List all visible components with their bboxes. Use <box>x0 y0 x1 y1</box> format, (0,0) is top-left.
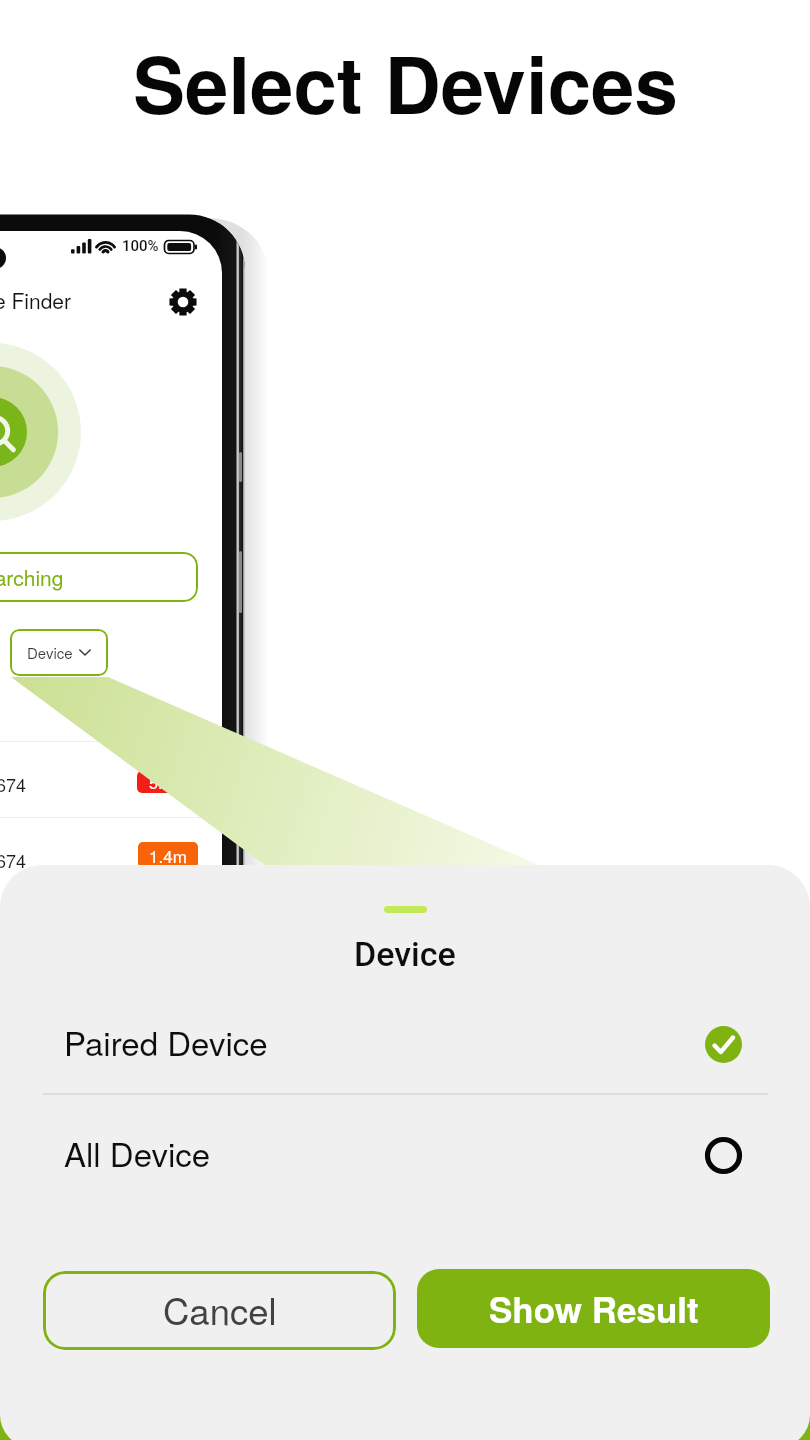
button[interactable]: Settings <box>169 288 197 316</box>
staticText: Searching <box>0 562 64 592</box>
button[interactable]: Paired Device <box>0 995 810 1081</box>
staticText: All Device <box>64 1129 211 1176</box>
staticText: 4C:2A:97:8F:674 <box>0 847 27 873</box>
button[interactable]: Searching <box>0 552 198 602</box>
staticText: Paired Device <box>64 1018 268 1065</box>
staticText: Device <box>354 934 456 974</box>
staticText: Bluetooth Device Finder <box>0 285 72 315</box>
staticText: 5.2m <box>149 771 185 793</box>
button[interactable]: Cancel <box>43 1271 396 1350</box>
staticText: 4C:2A:97:8F:674 <box>0 771 27 797</box>
staticText: Show Result <box>489 1284 699 1334</box>
staticText: Cancel <box>163 1283 277 1335</box>
staticText: 100% <box>122 237 159 255</box>
staticText: 1.4m <box>149 843 187 867</box>
button[interactable]: All Device <box>0 1107 810 1193</box>
staticText: Device <box>27 642 73 663</box>
button[interactable]: Device <box>10 629 108 676</box>
staticText: Select Devices <box>133 26 678 138</box>
button[interactable]: Show Result <box>417 1269 770 1348</box>
